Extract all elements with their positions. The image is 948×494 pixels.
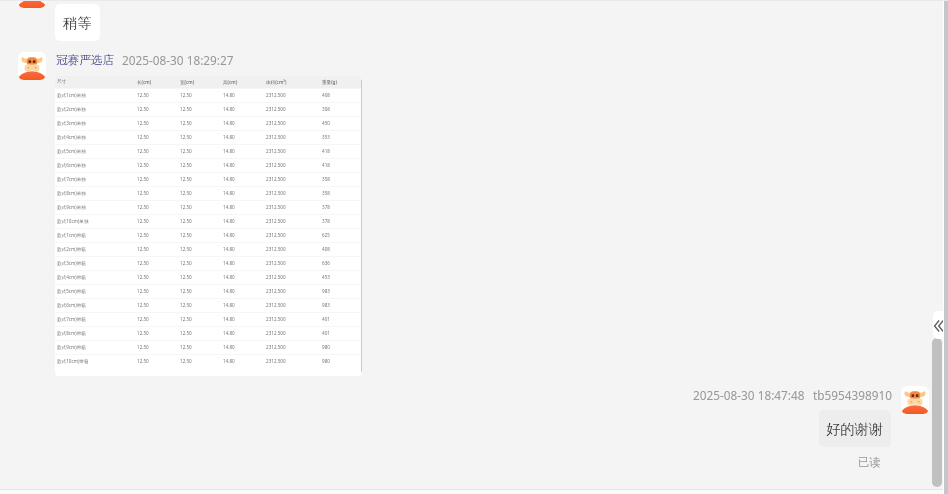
staticText: 12.50 (137, 106, 149, 112)
staticText: 418 (322, 148, 330, 154)
staticText: 12.50 (137, 176, 149, 182)
staticText: 长(cm) (137, 79, 152, 85)
button[interactable]: 稍等 (55, 4, 100, 41)
staticText: 高(cm) (223, 79, 238, 85)
staticText: 12.50 (180, 330, 192, 336)
staticText: 2312.500 (266, 316, 286, 322)
staticText: 378 (322, 218, 330, 224)
staticText: 12.50 (180, 246, 192, 252)
staticText: 12.50 (137, 330, 149, 336)
staticText: 2312.500 (266, 204, 286, 210)
staticText: 2312.500 (266, 358, 286, 364)
staticText: 款式4cm)单独 (57, 134, 86, 140)
staticText: 14.80 (223, 330, 235, 336)
staticText: 12.50 (180, 134, 192, 140)
staticText: 2025-08-30 18:47:48 (693, 387, 805, 403)
staticText: 12.50 (180, 218, 192, 224)
staticText: 980 (322, 344, 330, 350)
staticText: 2312.500 (266, 134, 286, 140)
staticText: 12.50 (137, 204, 149, 210)
staticText: 12.50 (180, 106, 192, 112)
staticText: 2312.500 (266, 302, 286, 308)
staticText: 12.50 (180, 148, 192, 154)
staticText: 12.50 (180, 344, 192, 350)
staticText: 款式5cm)带箱 (57, 288, 86, 294)
staticText: 12.50 (180, 92, 192, 98)
staticText: 款式7cm)带箱 (57, 316, 86, 322)
staticText: 已读 (858, 455, 881, 469)
staticText: 14.80 (223, 260, 235, 266)
staticText: 450 (322, 120, 330, 126)
staticText: 2312.500 (266, 246, 286, 252)
staticText: 12.50 (137, 232, 149, 238)
staticText: 宽(cm) (180, 79, 195, 85)
staticText: 12.50 (180, 204, 192, 210)
staticText: 12.50 (137, 148, 149, 154)
staticText: 983 (322, 288, 330, 294)
staticText: 14.80 (223, 344, 235, 350)
staticText: 2312.500 (266, 176, 286, 182)
staticText: 14.80 (223, 162, 235, 168)
staticText: 12.50 (180, 120, 192, 126)
staticText: 12.50 (137, 218, 149, 224)
staticText: 2312.500 (266, 162, 286, 168)
staticText: 稍等 (63, 14, 92, 32)
staticText: 358 (322, 190, 330, 196)
staticText: 12.50 (137, 316, 149, 322)
staticText: 款式9cm)单独 (57, 204, 86, 210)
staticText: 12.50 (180, 316, 192, 322)
staticText: 12.50 (137, 134, 149, 140)
staticText: 2312.500 (266, 106, 286, 112)
staticText: 款式8cm)单独 (57, 190, 86, 196)
staticText: 12.50 (137, 274, 149, 280)
staticText: 2312.500 (266, 92, 286, 98)
staticText: 12.50 (137, 190, 149, 196)
staticText: 14.80 (223, 92, 235, 98)
staticText: 401 (322, 316, 330, 322)
staticText: 12.50 (180, 302, 192, 308)
staticText: 378 (322, 204, 330, 210)
staticText: 款式2cm)带箱 (57, 246, 86, 252)
staticText: 12.50 (180, 162, 192, 168)
staticText: 401 (322, 330, 330, 336)
staticText: 款式4cm)带箱 (57, 274, 86, 280)
staticText: 2312.500 (266, 232, 286, 238)
staticText: 14.80 (223, 134, 235, 140)
staticText: 12.50 (137, 92, 149, 98)
staticText: 14.80 (223, 316, 235, 322)
staticText: 2312.500 (266, 274, 286, 280)
staticText: 2312.500 (266, 190, 286, 196)
staticText: 体积(cm³) (266, 79, 287, 85)
staticText: 款式3cm)单独 (57, 120, 86, 126)
staticText: 14.80 (223, 190, 235, 196)
staticText: 358 (322, 176, 330, 182)
staticText: 款式7cm)单独 (57, 176, 86, 182)
staticText: 12.50 (137, 120, 149, 126)
staticText: 408 (322, 246, 330, 252)
staticText: 14.80 (223, 246, 235, 252)
staticText: 12.50 (137, 358, 149, 364)
staticText: 14.80 (223, 120, 235, 126)
staticText: 14.80 (223, 176, 235, 182)
staticText: 款式1cm)带箱 (57, 232, 86, 238)
staticText: 12.50 (137, 302, 149, 308)
staticText: 453 (322, 274, 330, 280)
staticText: 636 (322, 260, 330, 266)
staticText: 418 (322, 162, 330, 168)
button[interactable]: 好的谢谢 (819, 410, 891, 447)
staticText: 980 (322, 358, 330, 364)
staticText: 款式10cm)单独 (57, 218, 89, 224)
staticText: 12.50 (180, 274, 192, 280)
staticText: 款式1cm)单独 (57, 92, 86, 98)
staticText: 2025-08-30 18:29:27 (122, 52, 234, 68)
staticText: 14.80 (223, 204, 235, 210)
staticText: 14.80 (223, 148, 235, 154)
staticText: 12.50 (180, 358, 192, 364)
staticText: 353 (322, 134, 330, 140)
staticText: 14.80 (223, 218, 235, 224)
staticText: 12.50 (137, 260, 149, 266)
staticText: 14.80 (223, 274, 235, 280)
staticText: 款式6cm)带箱 (57, 302, 86, 308)
staticText: 12.50 (180, 288, 192, 294)
button[interactable]: Collapse panel (933, 311, 944, 339)
